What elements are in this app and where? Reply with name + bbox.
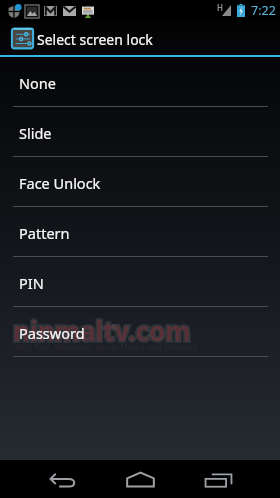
staticText: Slide: [19, 123, 52, 143]
staticText: Tech Tips, Windows, Social Media and Int…: [14, 341, 198, 352]
button[interactable]: Slide: [0, 107, 280, 157]
button[interactable]: Face Unlock: [0, 157, 280, 207]
button[interactable]: Password: [0, 307, 280, 357]
staticText: None: [19, 73, 56, 93]
staticText: Select screen lock: [37, 30, 153, 49]
button[interactable]: None: [0, 57, 280, 107]
button[interactable]: Home: [109, 460, 171, 498]
staticText: H: [217, 2, 223, 13]
staticText: Face Unlock: [19, 173, 101, 193]
staticText: 7:22: [251, 2, 276, 19]
staticText: ninmaltv.com: [13, 313, 191, 348]
button[interactable]: Recent apps: [188, 460, 250, 498]
button[interactable]: Pattern: [0, 207, 280, 257]
staticText: PIN: [19, 273, 44, 293]
staticText: Password: [19, 323, 85, 343]
button[interactable]: Back: [31, 460, 93, 498]
staticText: ninmaltv.com: [13, 313, 191, 348]
button[interactable]: PIN: [0, 257, 280, 307]
staticText: Pattern: [19, 223, 70, 243]
